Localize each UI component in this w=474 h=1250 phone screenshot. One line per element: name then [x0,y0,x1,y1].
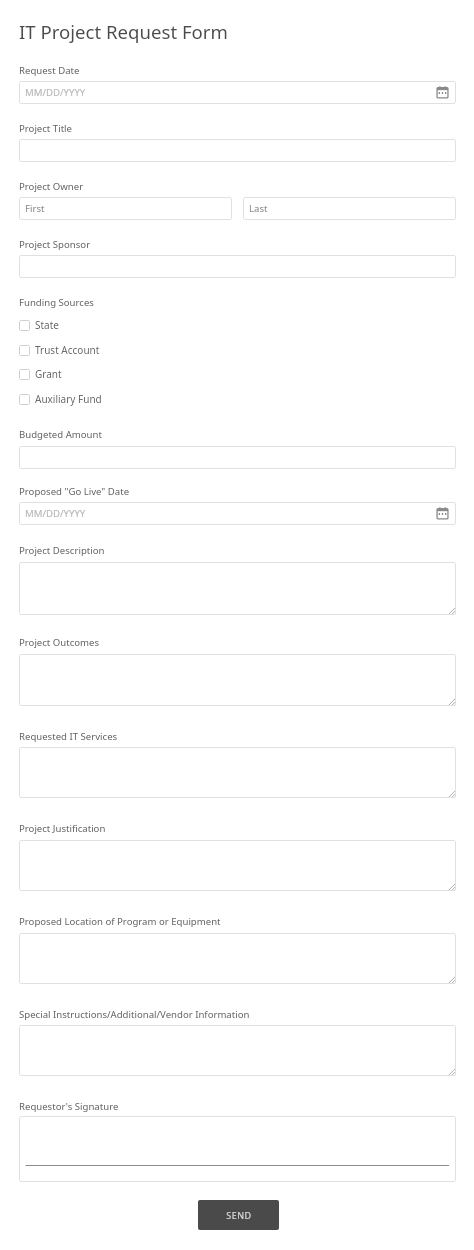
staticText: MM/DD/YYYY [25,507,86,520]
button[interactable]: Project Justification [19,840,456,891]
button[interactable]: First name [19,197,232,220]
staticText: Requestor's Signature [19,1100,119,1113]
button[interactable]: Trust Account [19,341,100,359]
staticText: MM/DD/YYYY [25,86,86,99]
button[interactable]: Requestor's Signature [19,1116,456,1182]
staticText: Proposed "Go Live" Date [19,485,130,498]
button[interactable]: Auxiliary Fund [19,390,102,408]
staticText: First [25,202,45,215]
staticText: Project Justification [19,822,106,835]
button[interactable]: Request Date [19,81,456,104]
button[interactable]: Requested IT Services [19,747,456,798]
staticText: Project Sponsor [19,238,91,251]
staticText: Project Title [19,122,72,135]
button[interactable]: Grant [19,365,62,383]
button[interactable]: SEND [198,1200,279,1230]
button[interactable]: Open calendar picker [434,505,451,522]
button[interactable]: Proposed Location of Program or Equipmen… [19,933,456,984]
button[interactable]: State [19,316,59,334]
staticText: Project Description [19,544,105,557]
button[interactable]: Budgeted Amount [19,446,456,469]
staticText: Project Outcomes [19,636,100,649]
staticText: Last [249,202,268,215]
button[interactable]: Last name [243,197,456,220]
button[interactable]: Special Instructions [19,1025,456,1076]
button[interactable]: Project Sponsor [19,255,456,278]
staticText: State [35,318,59,332]
staticText: Proposed Location of Program or Equipmen… [19,915,221,928]
staticText: SEND [226,1209,252,1221]
staticText: Special Instructions/Additional/Vendor I… [19,1008,250,1021]
button[interactable]: Project Outcomes [19,654,456,706]
button[interactable]: Open calendar picker [434,84,451,101]
staticText: Trust Account [35,343,100,357]
staticText: Project Owner [19,180,84,193]
staticText: Funding Sources [19,296,94,309]
staticText: Auxiliary Fund [35,392,102,406]
button[interactable]: Project Title [19,139,456,162]
staticText: IT Project Request Form [19,19,228,44]
staticText: Grant [35,367,62,381]
button[interactable]: Project Description [19,562,456,615]
button[interactable]: Proposed Go Live Date [19,502,456,525]
staticText: Request Date [19,64,80,77]
staticText: Requested IT Services [19,730,118,743]
staticText: Budgeted Amount [19,428,102,441]
